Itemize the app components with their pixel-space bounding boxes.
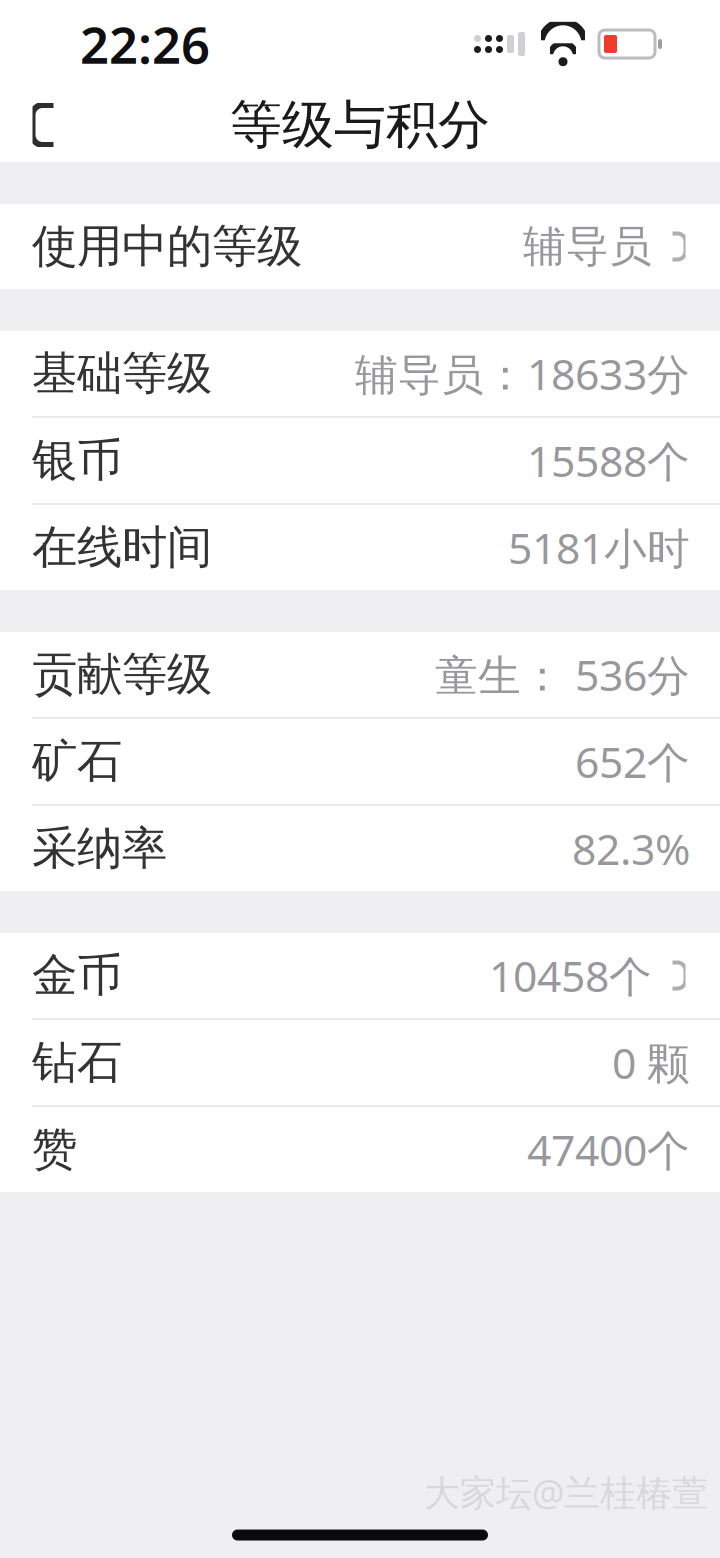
staticText: 童生： 536分: [435, 646, 690, 703]
staticText: 钻石: [32, 1035, 122, 1090]
staticText: 在线时间: [32, 520, 212, 575]
button[interactable]: 金币: [0, 933, 720, 1018]
button[interactable]: 矿石: [0, 719, 720, 804]
button[interactable]: 返回: [0, 88, 86, 162]
button[interactable]: 基础等级: [0, 331, 720, 416]
button[interactable]: 贡献等级: [0, 632, 720, 717]
button[interactable]: 钻石: [0, 1020, 720, 1105]
staticText: 大家坛@兰桂椿萱: [424, 1468, 708, 1516]
staticText: 金币: [32, 948, 122, 1003]
button[interactable]: 在线时间: [0, 505, 720, 590]
staticText: 5181小时: [508, 519, 690, 576]
staticText: 采纳率: [32, 821, 167, 876]
staticText: 82.3%: [572, 820, 690, 877]
staticText: 贡献等级: [32, 647, 212, 702]
staticText: 等级与积分: [230, 93, 490, 157]
button[interactable]: 使用中的等级: [0, 204, 720, 289]
staticText: 赞: [32, 1122, 77, 1177]
staticText: 47400个: [527, 1121, 690, 1178]
staticText: 辅导员：18633分: [355, 345, 690, 402]
staticText: 使用中的等级: [32, 219, 302, 274]
staticText: 基础等级: [32, 346, 212, 401]
staticText: 652个: [575, 733, 690, 790]
staticText: 银币: [32, 433, 122, 488]
staticText: 15588个: [527, 432, 690, 489]
staticText: 矿石: [32, 734, 122, 789]
staticText: 10458个: [489, 947, 652, 1004]
staticText: 22:26: [80, 10, 210, 78]
staticText: 辅导员: [523, 220, 652, 273]
button[interactable]: 银币: [0, 418, 720, 503]
button[interactable]: 赞: [0, 1107, 720, 1192]
button[interactable]: 采纳率: [0, 806, 720, 891]
staticText: 0 颗: [612, 1034, 690, 1091]
